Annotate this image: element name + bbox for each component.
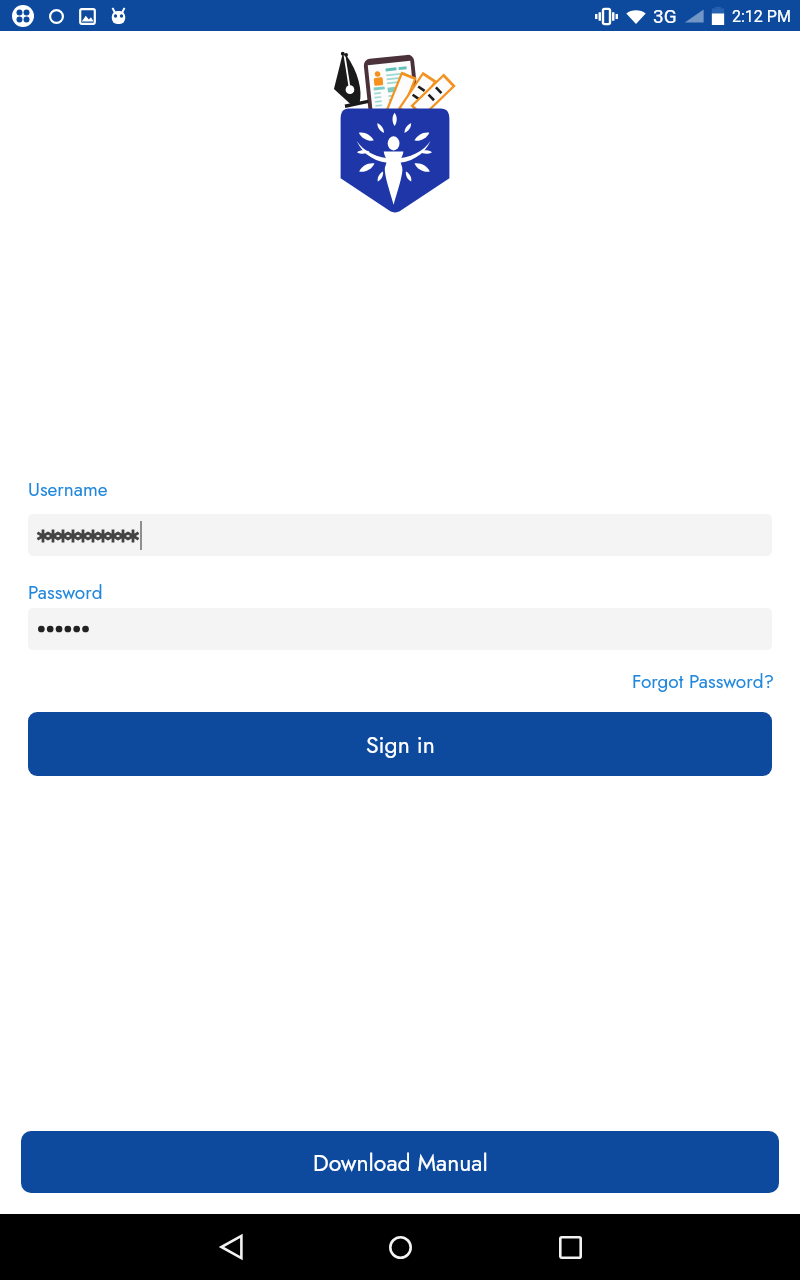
button[interactable]: Forgot Password? — [632, 668, 775, 695]
staticText: Forgot Password? — [632, 668, 775, 695]
staticText: 2:12 PM — [732, 7, 791, 26]
button[interactable]: Download Manual — [21, 1131, 779, 1193]
button[interactable]: Back — [197, 1214, 265, 1280]
button[interactable] — [28, 608, 772, 650]
staticText: Sign in — [366, 728, 435, 761]
button[interactable]: Home — [366, 1214, 434, 1280]
button[interactable] — [28, 514, 772, 556]
button[interactable]: Recents — [536, 1214, 604, 1280]
button[interactable]: Sign in — [28, 712, 772, 776]
staticText: Password — [28, 579, 103, 606]
staticText: 3G — [653, 5, 677, 27]
staticText: Download Manual — [313, 1146, 488, 1179]
staticText: Username — [28, 476, 108, 503]
